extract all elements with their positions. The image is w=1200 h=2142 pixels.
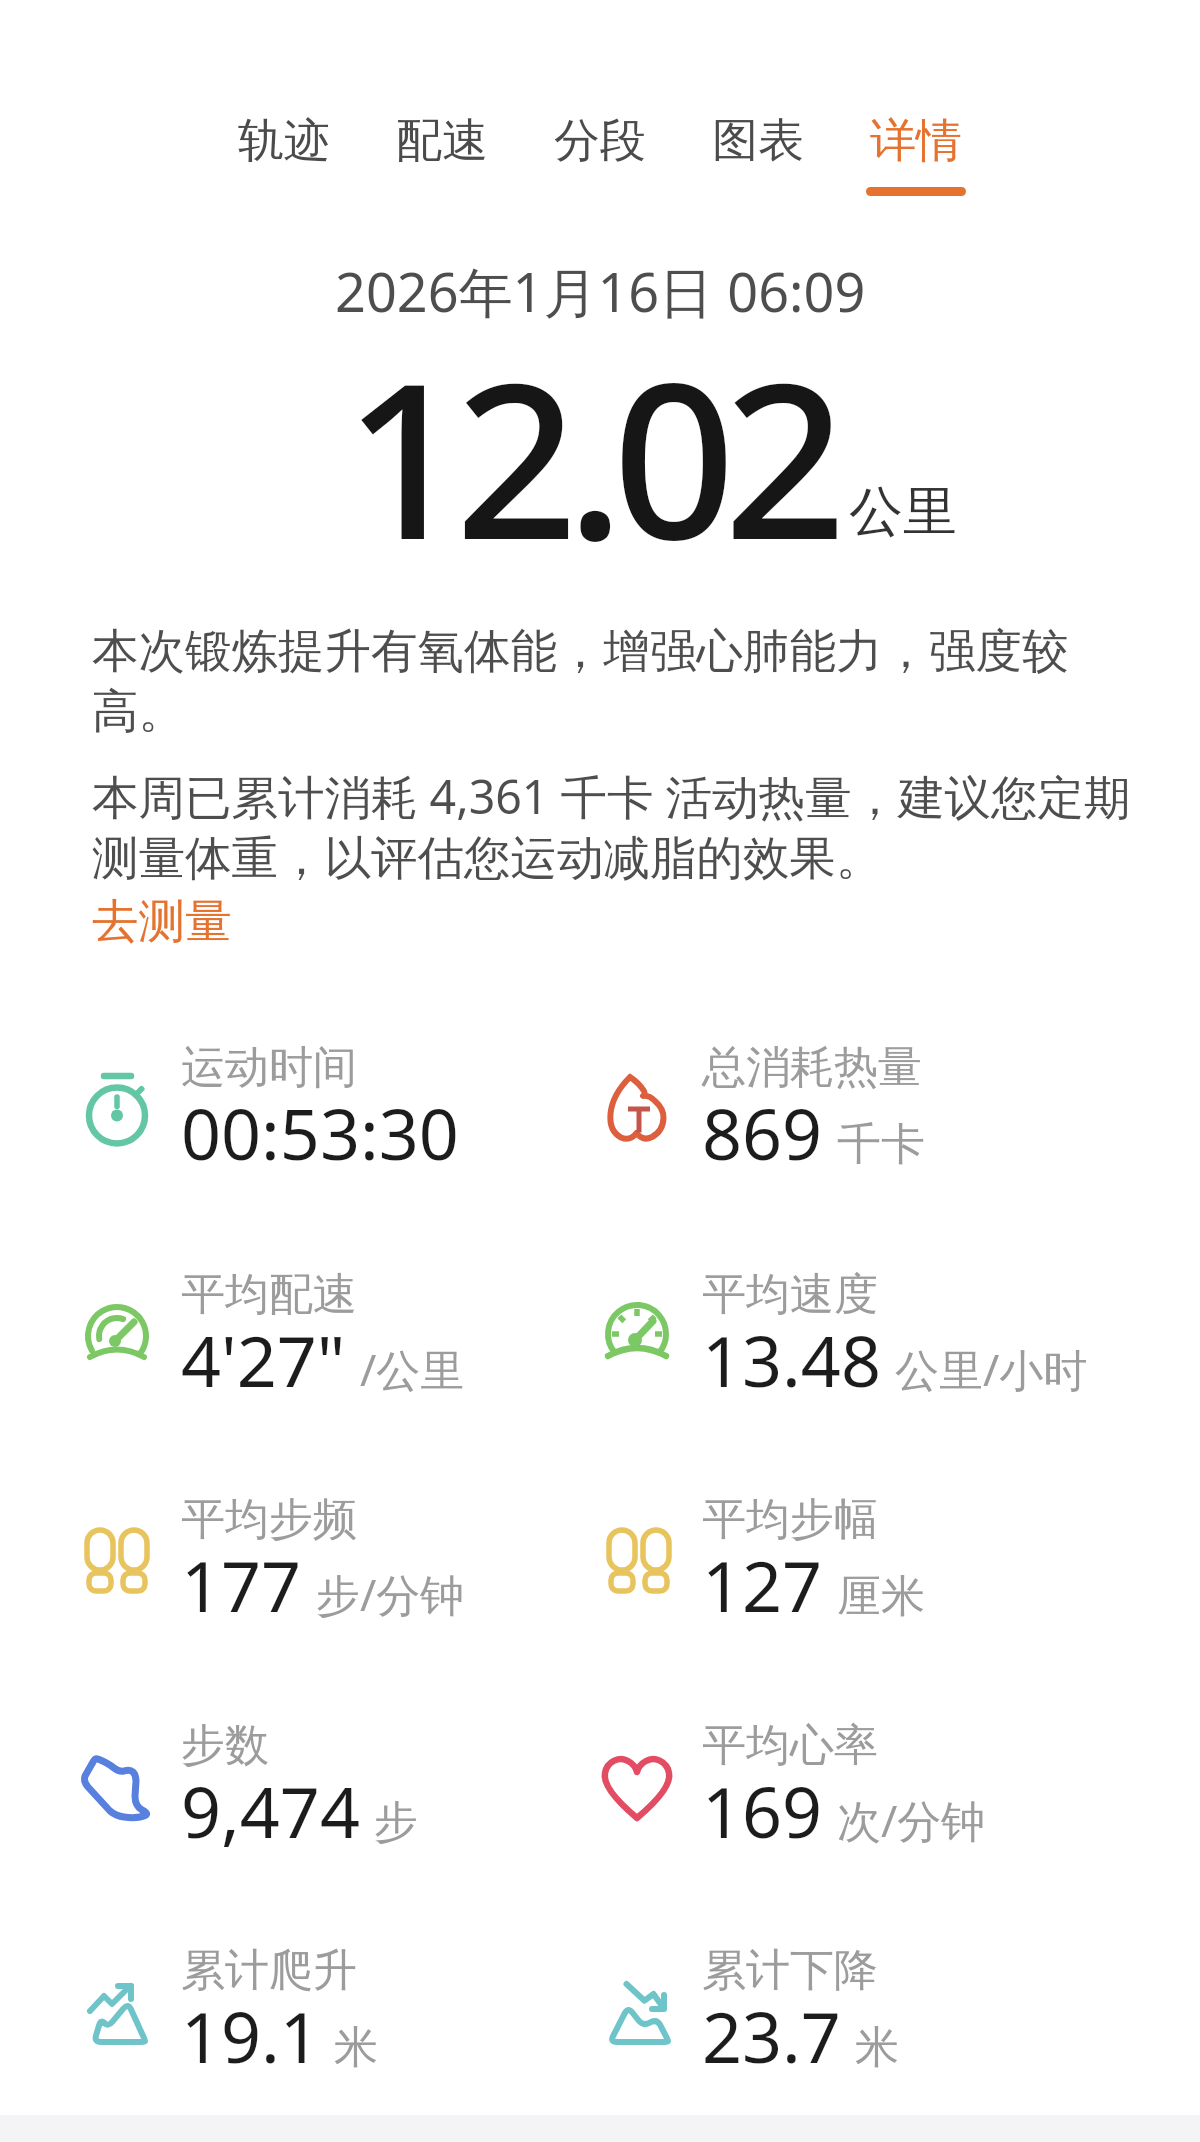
staticText: 2026年1月16日 06:09 xyxy=(335,254,866,328)
staticText: 配速 xyxy=(396,112,488,170)
staticText: 平均步幅 xyxy=(702,1492,878,1547)
staticText: 累计爬升 xyxy=(181,1943,357,1998)
staticText: 去测量 xyxy=(92,892,232,951)
button[interactable]: 详情 xyxy=(866,112,966,196)
staticText: 分段 xyxy=(554,112,646,170)
button[interactable]: 图表 xyxy=(708,112,808,196)
button[interactable]: 配速 xyxy=(392,112,492,196)
staticText: 平均速度 xyxy=(702,1267,878,1322)
button[interactable]: 分段 xyxy=(550,112,650,196)
staticText: 步 xyxy=(374,1795,418,1850)
staticText: 本周已累计消耗 4,361 千卡 活动热量，建议您定期 测量体重，以评估您运动减… xyxy=(92,764,1131,888)
staticText: 169 xyxy=(702,1763,823,1858)
staticText: 厘米 xyxy=(837,1569,925,1624)
staticText: /公里 xyxy=(360,1339,465,1399)
staticText: 平均心率 xyxy=(702,1718,878,1773)
staticText: 米 xyxy=(334,2020,378,2075)
button[interactable]: 轨迹 xyxy=(234,112,334,196)
staticText: 19.1 xyxy=(181,1988,320,2083)
staticText: 本次锻炼提升有氧体能，增强心肺能力，强度较 高。 xyxy=(92,622,1069,741)
staticText: 步数 xyxy=(181,1718,269,1773)
staticText: 步/分钟 xyxy=(316,1564,465,1624)
staticText: 运动时间 xyxy=(181,1040,357,1095)
staticText: 次/分钟 xyxy=(837,1790,986,1850)
staticText: 177 xyxy=(181,1537,302,1632)
staticText: 千卡 xyxy=(837,1117,925,1172)
staticText: 平均配速 xyxy=(181,1267,357,1322)
staticText: 平均步频 xyxy=(181,1492,357,1547)
staticText: 米 xyxy=(855,2020,899,2075)
staticText: 公里 xyxy=(849,478,957,546)
staticText: 23.7 xyxy=(702,1988,841,2083)
button[interactable]: 去测量 xyxy=(92,892,232,951)
staticText: 详情 xyxy=(870,112,962,170)
staticText: 869 xyxy=(702,1085,823,1180)
staticText: 轨迹 xyxy=(238,112,330,170)
staticText: 公里/小时 xyxy=(895,1339,1088,1399)
staticText: 127 xyxy=(702,1537,823,1632)
staticText: 4'27" xyxy=(181,1312,346,1407)
staticText: 13.48 xyxy=(702,1312,881,1407)
staticText: 累计下降 xyxy=(702,1943,878,1998)
staticText: 图表 xyxy=(712,112,804,170)
staticText: 总消耗热量 xyxy=(702,1040,922,1095)
staticText: 9,474 xyxy=(181,1763,360,1858)
staticText: 00:53:30 xyxy=(181,1085,459,1180)
staticText: 12.02 xyxy=(344,309,835,602)
